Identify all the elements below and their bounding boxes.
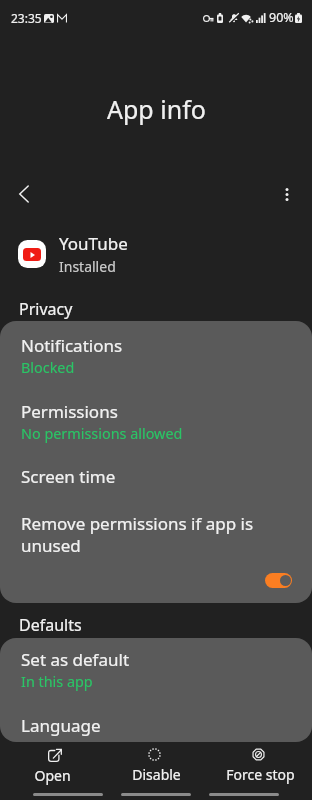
staticText: Force stop: [226, 765, 295, 784]
staticText: 90%: [269, 9, 294, 26]
staticText: Defaults: [19, 614, 82, 636]
staticText: Notifications: [21, 334, 123, 357]
staticText: Open: [34, 766, 71, 785]
staticText: Privacy: [19, 298, 73, 320]
button[interactable]: Disable: [104, 742, 208, 784]
button[interactable]: Remove permissions if app is unused: [0, 493, 312, 603]
button[interactable]: Permissions: [0, 387, 312, 449]
button[interactable]: Notifications: [0, 321, 312, 387]
staticText: No permissions allowed: [21, 424, 183, 444]
button[interactable]: More options: [267, 174, 307, 214]
staticText: In this app: [21, 672, 93, 692]
button[interactable]: Open: [0, 742, 104, 785]
button[interactable]: Toggle remove permissions: [265, 573, 292, 588]
button[interactable]: Language: [0, 701, 312, 742]
button[interactable]: Set as default: [0, 638, 312, 697]
button[interactable]: Screen time: [0, 452, 312, 496]
staticText: Permissions: [21, 400, 118, 423]
button[interactable]: Back: [4, 174, 44, 214]
staticText: Disable: [132, 765, 181, 784]
staticText: Blocked: [21, 358, 75, 378]
staticText: YouTube: [59, 232, 128, 255]
staticText: Installed: [59, 257, 116, 276]
staticText: Screen time: [21, 465, 116, 488]
staticText: Language: [21, 714, 101, 737]
staticText: Set as default: [21, 648, 130, 671]
staticText: Remove permissions if app is unused: [21, 512, 261, 557]
staticText: App info: [107, 92, 206, 126]
staticText: 23:35: [11, 10, 42, 26]
button[interactable]: Force stop: [208, 742, 312, 784]
button[interactable]: YouTube: [0, 230, 312, 278]
